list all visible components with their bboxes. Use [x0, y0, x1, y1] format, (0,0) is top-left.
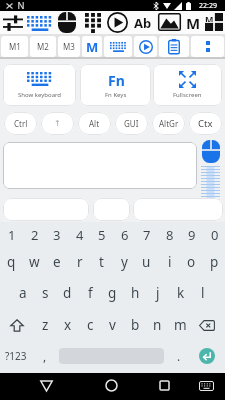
staticText: M3	[63, 41, 75, 52]
staticText: y	[121, 253, 128, 271]
button[interactable]	[83, 12, 103, 33]
staticText: 8	[166, 226, 174, 244]
button[interactable]	[159, 36, 189, 57]
button[interactable]	[107, 12, 128, 33]
button[interactable]	[3, 198, 89, 221]
button[interactable]: g	[101, 277, 124, 308]
staticText: M1	[9, 41, 21, 52]
staticText: z	[42, 316, 49, 334]
button[interactable]	[4, 309, 30, 341]
button[interactable]: 6	[113, 222, 136, 248]
button[interactable]: z	[34, 309, 57, 341]
button[interactable]: M	[82, 36, 102, 57]
button[interactable]: 0	[203, 222, 225, 248]
button[interactable]: r	[68, 248, 91, 276]
button[interactable]: 2	[23, 222, 46, 248]
button[interactable]	[104, 36, 132, 57]
button[interactable]	[56, 12, 77, 33]
button[interactable]: ?123	[2, 341, 30, 371]
button[interactable]	[194, 309, 220, 341]
button[interactable]: i	[158, 248, 181, 276]
button[interactable]	[133, 198, 223, 221]
button[interactable]	[159, 380, 170, 391]
button[interactable]: 3	[45, 222, 68, 248]
button[interactable]: 1	[0, 222, 23, 248]
button[interactable]	[201, 166, 220, 200]
button[interactable]: Ab	[129, 11, 157, 34]
staticText: 7	[143, 226, 151, 244]
button[interactable]	[27, 14, 53, 32]
button[interactable]: 5	[90, 222, 113, 248]
button[interactable]: v	[101, 309, 124, 341]
staticText: 5	[98, 226, 106, 244]
button[interactable]: Fn	[80, 64, 151, 106]
button[interactable]	[199, 348, 215, 364]
button[interactable]	[105, 379, 118, 392]
button[interactable]	[134, 36, 157, 57]
button[interactable]: w	[23, 248, 46, 276]
staticText: 4	[76, 226, 84, 244]
staticText: 1	[8, 226, 16, 244]
button[interactable]: o	[180, 248, 203, 276]
button[interactable]: n	[146, 309, 169, 341]
button[interactable]: x	[56, 309, 79, 341]
button[interactable]: m	[169, 309, 192, 341]
button[interactable]: Ctx	[189, 112, 222, 135]
button[interactable]: M1	[1, 36, 28, 57]
staticText: Ab	[134, 14, 152, 32]
button[interactable]: b	[124, 309, 147, 341]
staticText: ↑	[54, 119, 61, 128]
button[interactable]	[3, 142, 197, 189]
button[interactable]: s	[34, 277, 57, 308]
button[interactable]: M3	[58, 36, 80, 57]
button[interactable]: q	[0, 248, 23, 276]
staticText: g	[108, 284, 117, 302]
button[interactable]: Ctrl	[4, 112, 37, 135]
button[interactable]: Show keyboard	[3, 64, 76, 106]
button[interactable]: Alt	[78, 112, 111, 135]
button[interactable]: .	[168, 341, 190, 371]
staticText: a	[19, 284, 27, 302]
button[interactable]: h	[124, 277, 147, 308]
button[interactable]	[158, 13, 181, 31]
staticText: Fn	[108, 71, 125, 90]
button[interactable]	[191, 36, 224, 57]
staticText: x	[64, 316, 72, 334]
button[interactable]: k	[169, 277, 192, 308]
button[interactable]: d	[56, 277, 79, 308]
button[interactable]: y	[113, 248, 136, 276]
button[interactable]	[199, 381, 214, 391]
staticText: b	[131, 316, 140, 334]
button[interactable]: AltGr	[152, 112, 185, 135]
button[interactable]	[93, 198, 130, 221]
button[interactable]: t	[90, 248, 113, 276]
button[interactable]: j	[146, 277, 169, 308]
button[interactable]: a	[11, 277, 34, 308]
button[interactable]: M	[205, 13, 223, 31]
button[interactable]: p	[203, 248, 225, 276]
button[interactable]: ↑	[41, 112, 74, 135]
button[interactable]: 9	[180, 222, 203, 248]
button[interactable]: l	[191, 277, 214, 308]
button[interactable]: M	[183, 11, 203, 34]
staticText: 3	[53, 226, 61, 244]
button[interactable]: c	[79, 309, 102, 341]
button[interactable]: f	[79, 277, 102, 308]
button[interactable]: M2	[30, 36, 56, 57]
staticText: r	[77, 253, 83, 271]
button[interactable]: GUI	[115, 112, 148, 135]
button[interactable]: Fullscreen	[153, 64, 222, 106]
button[interactable]	[2, 13, 23, 33]
button[interactable]: 4	[68, 222, 91, 248]
staticText: M	[186, 13, 201, 33]
staticText: AltGr	[159, 118, 179, 129]
staticText: j	[156, 284, 160, 302]
button[interactable]	[202, 140, 220, 163]
button[interactable]: ,	[34, 341, 56, 371]
button[interactable]: u	[135, 248, 158, 276]
button[interactable]: e	[45, 248, 68, 276]
button[interactable]: 7	[135, 222, 158, 248]
button[interactable]	[40, 380, 53, 392]
button[interactable]: 8	[158, 222, 181, 248]
